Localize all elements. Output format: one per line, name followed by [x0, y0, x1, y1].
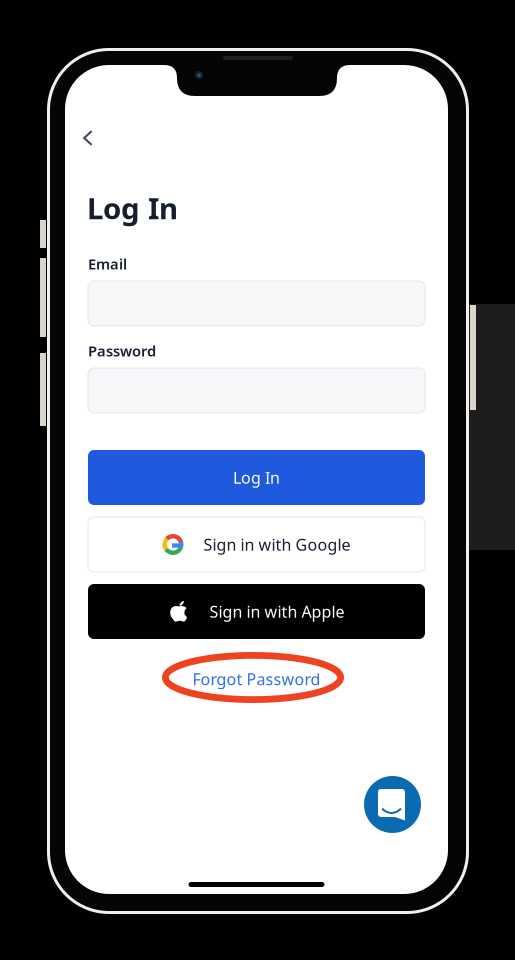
button[interactable]: Log In — [88, 450, 425, 505]
staticText: Log In — [233, 467, 280, 488]
staticText: Forgot Password — [192, 668, 320, 690]
staticText: Password — [88, 341, 156, 360]
staticText: Sign in with Apple — [209, 601, 344, 622]
button[interactable]: Sign in with Apple — [88, 584, 425, 639]
button[interactable]: Forgot Password — [181, 666, 331, 692]
staticText: Log In — [87, 188, 178, 227]
button[interactable]: Open chat — [364, 776, 421, 833]
button[interactable]: Back — [73, 120, 103, 156]
staticText: Email — [88, 254, 127, 273]
staticText: Sign in with Google — [203, 534, 350, 555]
button[interactable]: Sign in with Google — [88, 517, 425, 572]
